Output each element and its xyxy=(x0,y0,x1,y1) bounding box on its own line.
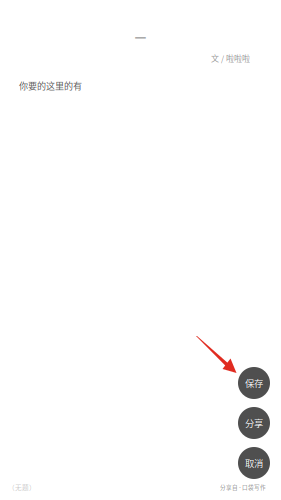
staticText: — xyxy=(134,26,146,45)
staticText: 分享 xyxy=(245,416,263,430)
staticText: 文 / 啦啦啦 xyxy=(211,52,250,64)
button[interactable]: 保存 xyxy=(238,367,270,399)
staticText: 你要的这里的有 xyxy=(19,79,82,92)
button[interactable]: 取消 xyxy=(238,447,270,479)
staticText: 取消 xyxy=(245,456,263,470)
staticText: （无题） xyxy=(8,482,36,492)
button[interactable]: 分享 xyxy=(238,407,270,439)
staticText: 保存 xyxy=(245,376,263,390)
staticText: 分享自 - 口袋写作 xyxy=(220,483,266,491)
